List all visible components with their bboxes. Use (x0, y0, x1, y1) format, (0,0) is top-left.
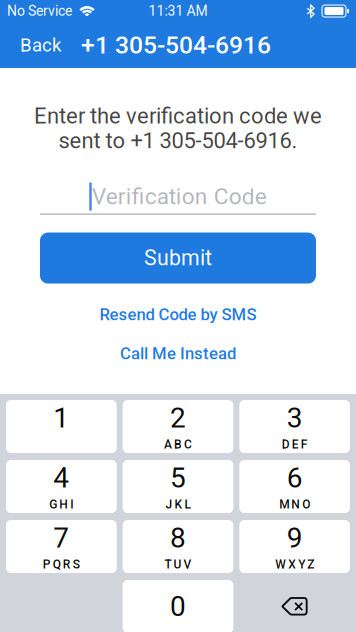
button[interactable]: 8 (123, 520, 233, 573)
staticText: DEF (282, 437, 308, 451)
button[interactable]: 7 (6, 520, 117, 573)
staticText: Submit (144, 246, 212, 271)
staticText: GHI (49, 497, 73, 511)
staticText: Resend Code by SMS (99, 305, 256, 324)
button[interactable]: 6 (239, 460, 350, 513)
button[interactable]: Resend Code by SMS (99, 302, 256, 328)
staticText: sent to +1 305-504-6916. (58, 128, 297, 154)
button[interactable]: Delete (239, 580, 350, 632)
staticText: 8 (170, 522, 186, 554)
button[interactable]: 1 (6, 400, 117, 453)
staticText: 0 (170, 590, 186, 623)
button[interactable]: 4 (6, 460, 117, 513)
staticText: 11:31 AM (148, 3, 207, 19)
staticText: Enter the verification code we (34, 103, 322, 129)
staticText: 9 (287, 522, 303, 554)
staticText: +1 305-504-6916 (81, 30, 271, 59)
staticText: ABC (164, 437, 192, 451)
staticText: Call Me Instead (120, 344, 236, 363)
button[interactable]: Submit (40, 233, 316, 284)
staticText: 6 (287, 462, 303, 494)
staticText: 2 (170, 402, 186, 434)
staticText: JKL (165, 497, 190, 511)
button[interactable]: Call Me Instead (120, 341, 236, 367)
staticText: Verification Code (92, 183, 267, 210)
button[interactable]: 9 (239, 520, 350, 573)
staticText: 1 (53, 402, 69, 434)
staticText: 3 (287, 402, 303, 434)
staticText: WXYZ (275, 557, 314, 571)
button[interactable]: Back (0, 22, 81, 68)
staticText: MNO (279, 497, 310, 511)
staticText: 5 (170, 462, 186, 494)
button[interactable]: 2 (123, 400, 233, 453)
staticText: TUV (164, 557, 191, 571)
staticText: PQRS (43, 557, 80, 571)
button[interactable]: 3 (239, 400, 350, 453)
staticText: No Service (7, 3, 72, 19)
staticText: Back (20, 34, 61, 56)
button[interactable]: 0 (123, 580, 233, 632)
staticText: 4 (53, 462, 69, 494)
staticText: 7 (53, 522, 69, 554)
button[interactable]: 5 (123, 460, 233, 513)
